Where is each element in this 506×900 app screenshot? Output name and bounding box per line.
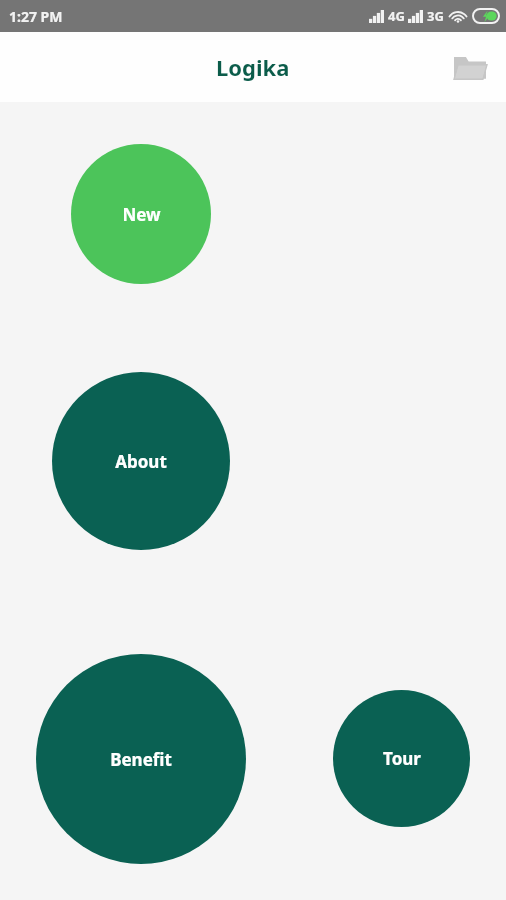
button[interactable]: Benefit — [36, 654, 246, 864]
staticText: 3G — [427, 7, 444, 25]
staticText: Logika — [216, 52, 290, 82]
staticText: About — [115, 450, 167, 473]
staticText: New — [122, 203, 161, 226]
button[interactable]: New — [71, 144, 211, 284]
staticText: 1:27 PM — [9, 7, 63, 26]
staticText: 4G — [388, 7, 405, 25]
button[interactable]: Open files — [446, 43, 494, 91]
button[interactable]: Tour — [333, 690, 470, 827]
button[interactable]: About — [52, 372, 230, 550]
staticText: Tour — [383, 747, 421, 770]
staticText: Benefit — [110, 748, 172, 771]
